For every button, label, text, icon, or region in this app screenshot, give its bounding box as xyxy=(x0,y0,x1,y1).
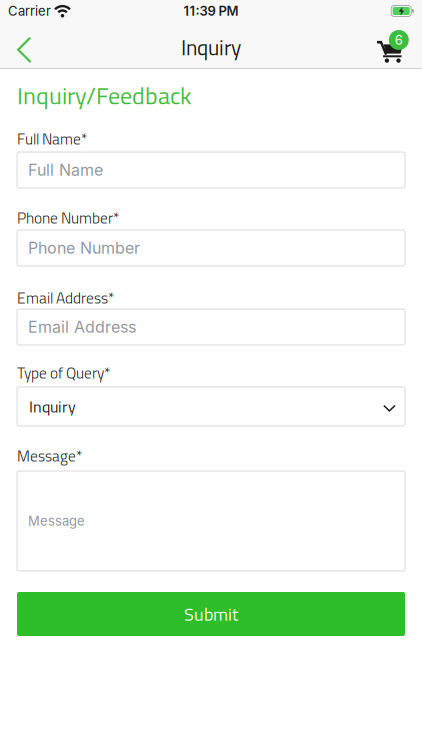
staticText: Email Address xyxy=(28,317,136,337)
button[interactable]: 6 xyxy=(376,26,422,63)
staticText: 11:39 PM xyxy=(183,3,238,19)
staticText: Type of Query* xyxy=(17,361,110,384)
staticText: Email Address* xyxy=(17,286,114,309)
button[interactable]: Full Name xyxy=(17,152,405,188)
staticText: Carrier xyxy=(8,3,51,19)
button[interactable]: Phone Number xyxy=(17,230,405,266)
button[interactable]: Email Address xyxy=(17,309,405,345)
staticText: Message xyxy=(28,513,85,529)
staticText: Full Name xyxy=(28,160,103,180)
button[interactable]: Submit xyxy=(17,592,405,636)
staticText: Inquiry xyxy=(29,394,76,419)
staticText: Inquiry/Feedback xyxy=(17,77,191,113)
staticText: Submit xyxy=(184,600,238,628)
staticText: Message* xyxy=(17,444,82,467)
staticText: Phone Number* xyxy=(17,206,119,229)
staticText: Phone Number xyxy=(28,238,140,258)
staticText: Full Name* xyxy=(17,127,87,150)
staticText: Inquiry xyxy=(181,31,241,63)
staticText: 6 xyxy=(395,32,403,48)
button[interactable] xyxy=(0,26,32,63)
button[interactable]: Message xyxy=(17,471,405,571)
button[interactable]: Inquiry xyxy=(17,387,405,426)
